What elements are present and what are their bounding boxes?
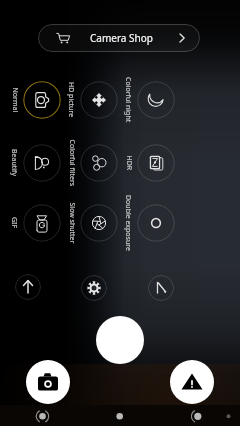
button[interactable]: HDR <box>137 144 175 182</box>
button[interactable]: Camera <box>26 360 70 404</box>
staticText: HD picture <box>66 82 76 118</box>
button[interactable]: Slow shutter <box>80 204 118 242</box>
staticText: Colorful night <box>123 77 133 123</box>
staticText: Normal <box>9 87 19 112</box>
button[interactable]: Edit <box>148 275 174 301</box>
button[interactable]: Shutter <box>96 316 144 364</box>
staticText: GIF <box>9 217 19 229</box>
staticText: Double exposure <box>123 195 133 251</box>
button[interactable]: Camera Shop <box>38 24 200 52</box>
staticText: Beautify <box>9 149 19 177</box>
staticText: HDR <box>123 155 133 170</box>
button[interactable]: Colorful filters <box>80 144 118 182</box>
button[interactable]: Settings <box>81 275 107 301</box>
button[interactable]: Flash <box>15 274 41 300</box>
button[interactable]: Normal <box>23 81 61 119</box>
button[interactable]: Beautify <box>23 144 61 182</box>
button[interactable]: Warning <box>170 360 214 404</box>
button[interactable]: HD picture <box>80 81 118 119</box>
staticText: Camera Shop <box>90 31 153 45</box>
staticText: Colorful filters <box>66 139 76 186</box>
staticText: Slow shutter <box>66 202 76 243</box>
button[interactable]: Double exposure <box>137 204 175 242</box>
button[interactable]: Colorful night <box>137 81 175 119</box>
button[interactable]: GIF <box>23 204 61 242</box>
